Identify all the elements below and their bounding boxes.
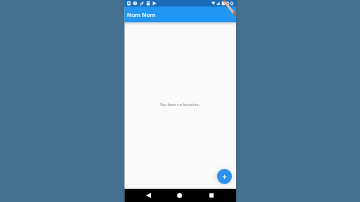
staticText: You have no favorites.: [160, 102, 200, 107]
button[interactable]: Nom Nom: [124, 7, 236, 23]
button[interactable]: Home: [162, 189, 199, 202]
button[interactable]: Recent apps: [199, 189, 236, 202]
staticText: Nom Nom: [127, 11, 156, 19]
button[interactable]: Back: [124, 189, 161, 202]
button[interactable]: Add favorite: [217, 169, 232, 184]
